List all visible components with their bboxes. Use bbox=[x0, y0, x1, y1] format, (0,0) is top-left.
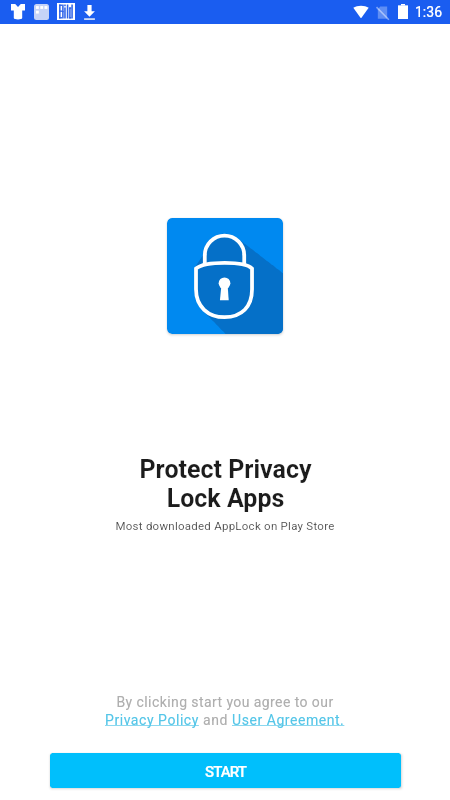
staticText: Protect Privacy Lock Apps bbox=[139, 455, 312, 513]
button[interactable]: Privacy Policy bbox=[105, 712, 199, 728]
staticText: START bbox=[205, 763, 247, 781]
staticText: 1:36 bbox=[415, 4, 442, 20]
staticText: By clicking start you agree to our bbox=[116, 694, 334, 710]
button[interactable]: START bbox=[50, 753, 401, 788]
staticText: and bbox=[199, 712, 232, 728]
other: AppLock bbox=[167, 218, 283, 334]
staticText: Most downloaded AppLock on Play Store bbox=[115, 519, 335, 532]
button[interactable]: User Agreement. bbox=[232, 712, 345, 728]
